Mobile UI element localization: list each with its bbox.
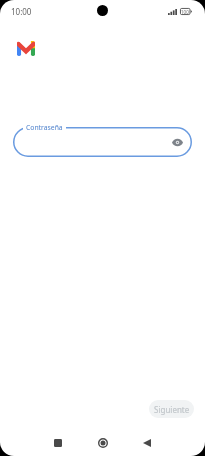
staticText: 100 [181, 9, 189, 15]
button[interactable]: Atrás [133, 429, 161, 456]
staticText: Siguiente [154, 404, 190, 415]
staticText: 10:00 [11, 6, 32, 17]
button[interactable]: Inicio [89, 429, 117, 456]
button[interactable]: Mostrar contraseña [169, 134, 185, 150]
staticText: Contraseña [26, 123, 63, 132]
button[interactable]: Recientes [44, 429, 72, 456]
button[interactable]: Siguiente [149, 400, 194, 418]
